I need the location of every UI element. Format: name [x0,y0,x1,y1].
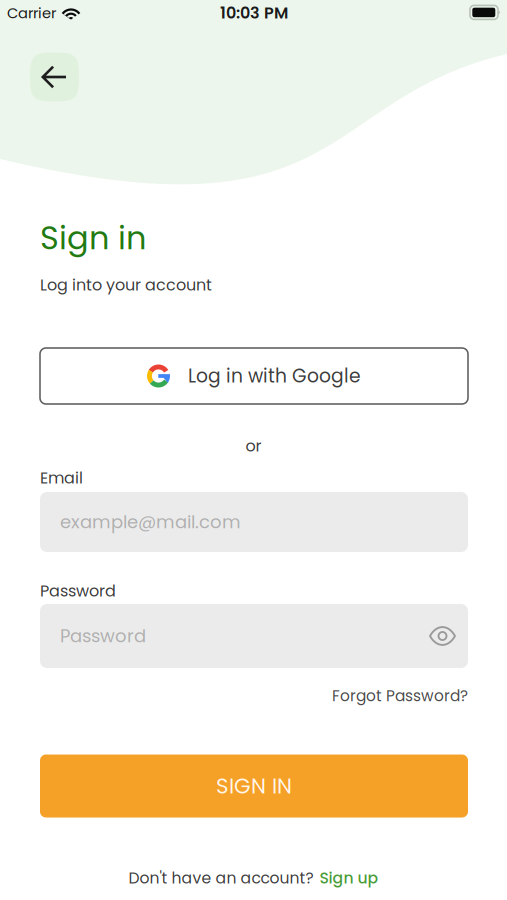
staticText: Log into your account [40,274,212,296]
staticText: Don't have an account? [128,867,313,889]
staticText: example@mail.com [60,509,241,535]
staticText: Carrier [7,3,56,23]
staticText: Password [40,580,116,602]
button[interactable]: Back [30,52,79,101]
staticText: or [245,435,261,457]
button[interactable]: Show password [429,625,456,646]
staticText: Sign up [319,867,378,889]
staticText: Password [60,623,146,649]
staticText: SIGN IN [216,771,292,801]
staticText: Sign in [40,216,146,260]
button[interactable]: Sign up [319,867,378,889]
button[interactable]: SIGN IN [40,754,468,817]
staticText: 10:03 PM [220,2,288,24]
button[interactable]: Log in with Google [40,348,468,404]
button[interactable]: Forgot Password? [40,685,468,707]
staticText: Forgot Password? [332,685,468,707]
staticText: Log in with Google [188,363,361,389]
staticText: Email [40,467,83,489]
